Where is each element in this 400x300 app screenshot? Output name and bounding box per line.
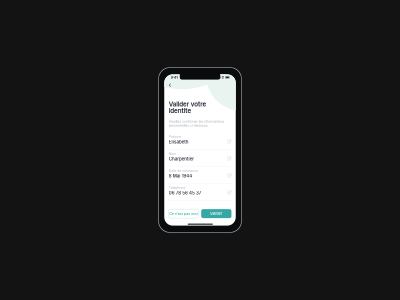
- button[interactable]: Nom: [57, 149, 343, 217]
- button[interactable]: Prénom: [57, 81, 343, 149]
- staticText: Date de naissance: [74, 224, 193, 241]
- button[interactable]: Date de naissance: [57, 217, 343, 285]
- staticText: Charpentier: [74, 175, 175, 197]
